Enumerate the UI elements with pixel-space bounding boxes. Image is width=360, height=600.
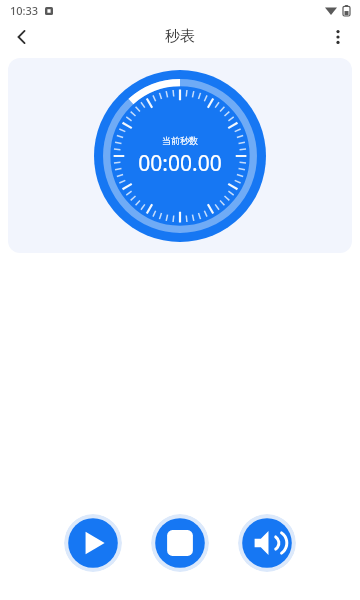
button[interactable]: Stop	[151, 514, 209, 572]
staticText: 00:00.00	[138, 149, 222, 178]
button[interactable]: Start	[64, 514, 122, 572]
staticText: 秒表	[165, 27, 195, 46]
button[interactable]: Sound	[238, 514, 296, 572]
button[interactable]: Back	[0, 20, 44, 53]
staticText: 当前秒数	[162, 135, 198, 146]
staticText: 10:33	[10, 3, 39, 18]
button[interactable]: More options	[316, 20, 360, 53]
